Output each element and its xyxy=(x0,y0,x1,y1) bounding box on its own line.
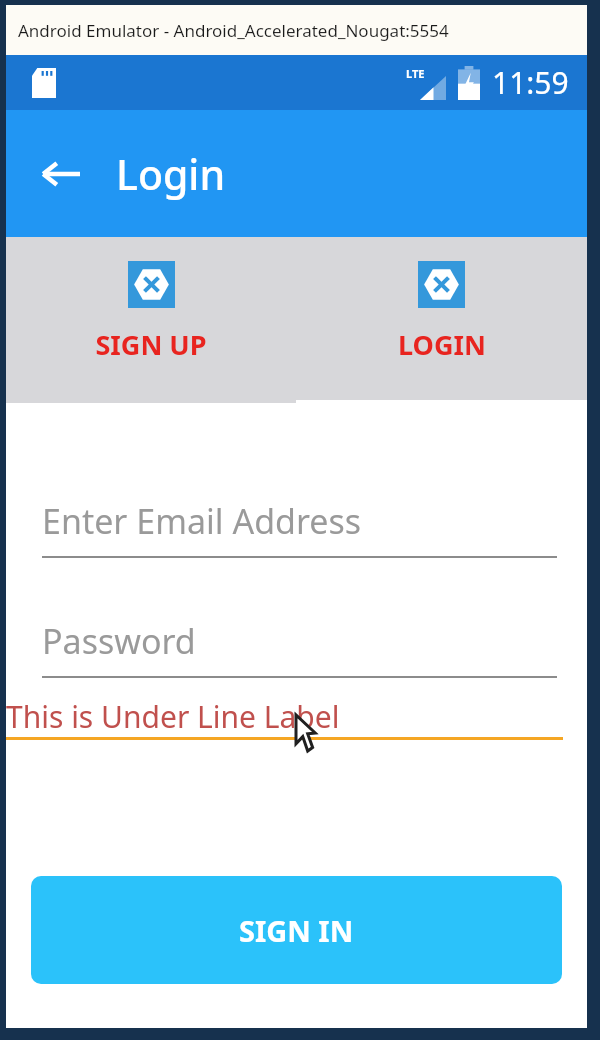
button[interactable]: LOGIN xyxy=(296,237,587,403)
staticText: 11:59 xyxy=(492,62,569,103)
staticText: Login xyxy=(116,146,226,202)
button[interactable]: SIGN UP xyxy=(6,237,296,403)
staticText: Android Emulator - Android_Accelerated_N… xyxy=(18,19,449,42)
button[interactable]: SIGN IN xyxy=(31,876,562,984)
staticText: LTE xyxy=(406,66,425,81)
staticText: SIGN UP xyxy=(95,326,207,363)
staticText: LOGIN xyxy=(398,326,486,363)
button[interactable]: Back xyxy=(32,146,88,202)
staticText: This is Under Line Label xyxy=(6,696,340,737)
staticText: Password xyxy=(42,618,196,664)
staticText: SIGN IN xyxy=(239,911,354,950)
button[interactable]: This is Under Line Label xyxy=(6,696,563,737)
staticText: Enter Email Address xyxy=(42,498,362,544)
button[interactable]: Password xyxy=(42,618,557,678)
button[interactable]: Enter Email Address xyxy=(42,498,557,558)
